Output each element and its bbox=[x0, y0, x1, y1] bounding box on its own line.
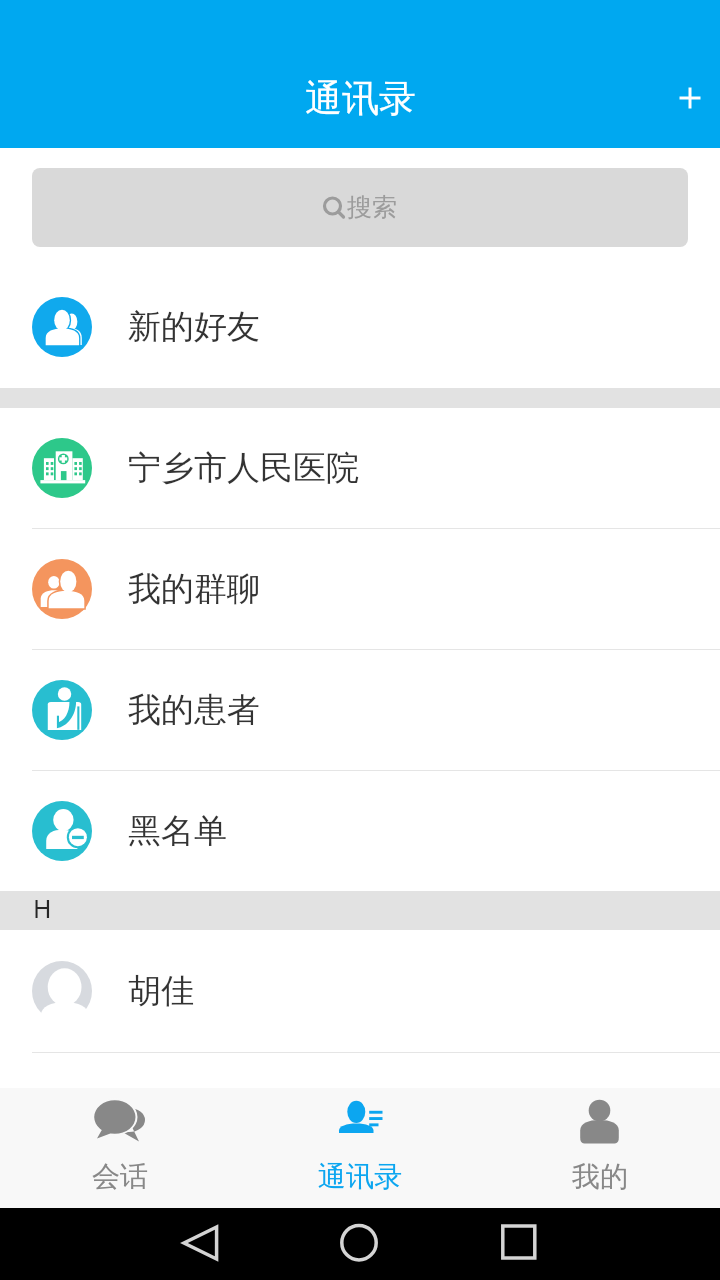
staticText: 宁乡市人民医院 bbox=[128, 447, 359, 489]
staticText: 黑名单 bbox=[128, 810, 227, 852]
staticText: 我的 bbox=[572, 1159, 628, 1194]
button[interactable]: 胡佳 bbox=[0, 930, 720, 1052]
button[interactable]: Home bbox=[324, 1208, 396, 1280]
staticText: 通讯录 bbox=[305, 75, 416, 122]
button[interactable]: 我的 bbox=[480, 1088, 720, 1194]
button[interactable]: 搜索 bbox=[32, 168, 688, 247]
button[interactable]: 会话 bbox=[0, 1088, 240, 1194]
staticText: 我的患者 bbox=[128, 689, 260, 731]
staticText: 新的好友 bbox=[128, 306, 260, 348]
button[interactable]: 新的好友 bbox=[0, 265, 720, 388]
button[interactable]: 我的患者 bbox=[0, 650, 720, 770]
staticText: H bbox=[33, 891, 52, 925]
staticText: 通讯录 bbox=[318, 1159, 402, 1194]
button[interactable]: 宁乡市人民医院 bbox=[0, 408, 720, 528]
staticText: 搜索 bbox=[347, 192, 397, 223]
staticText: 胡佳 bbox=[128, 970, 194, 1012]
button[interactable]: 我的群聊 bbox=[0, 529, 720, 649]
button[interactable]: 黑名单 bbox=[0, 771, 720, 891]
button[interactable]: Recents bbox=[484, 1208, 556, 1280]
staticText: 我的群聊 bbox=[128, 568, 260, 610]
button[interactable]: 通讯录 bbox=[240, 1088, 480, 1194]
button[interactable]: Add bbox=[656, 64, 720, 132]
button[interactable]: Back bbox=[164, 1208, 236, 1280]
staticText: 会话 bbox=[92, 1159, 148, 1194]
